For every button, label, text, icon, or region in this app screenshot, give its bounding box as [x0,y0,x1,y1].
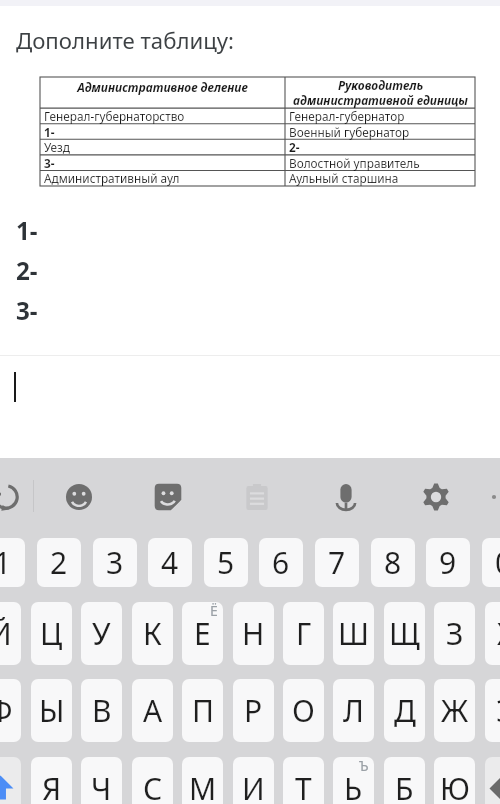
staticText: Д [394,690,416,731]
button[interactable]: Translate [0,477,26,517]
staticText: Р [244,690,263,731]
button[interactable]: Emoji [59,477,99,517]
staticText: 7 [328,542,346,583]
button[interactable]: Й [0,602,21,665]
button[interactable]: А [132,679,173,742]
button[interactable]: Г [283,602,324,665]
staticText: У [92,613,111,654]
staticText: Г [296,613,312,654]
staticText: 4 [161,542,179,583]
button[interactable]: Т [283,757,324,804]
button[interactable]: Ф [0,679,21,742]
staticText: Уезд [44,139,70,155]
staticText: Э [496,690,500,731]
button[interactable]: 7 [315,538,359,587]
button[interactable]: М [182,757,223,804]
staticText: Ч [91,768,112,804]
staticText: О [292,690,315,731]
staticText: Н [242,613,265,654]
button[interactable]: 9 [426,538,470,587]
button[interactable]: И [233,757,274,804]
staticText: Ж [441,690,469,731]
button[interactable]: 8 [371,538,415,587]
staticText: С [143,768,163,804]
staticText: 2- [16,254,38,287]
button[interactable]: О [283,679,324,742]
staticText: Волостной управитель [289,155,420,171]
staticText: 0 [495,542,500,583]
staticText: 3 [106,542,124,583]
button[interactable]: Ы [31,679,72,742]
button[interactable]: Э [485,679,500,742]
button[interactable]: Х [485,602,500,665]
button[interactable]: Б [384,757,425,804]
staticText: 1- [44,124,55,140]
button[interactable]: С [132,757,173,804]
staticText: Й [0,613,12,654]
button[interactable]: More options [483,477,500,517]
staticText: Я [42,768,62,804]
button[interactable]: Ь [333,757,374,804]
button[interactable]: З [434,602,475,665]
staticText: Аульный старшина [289,170,399,186]
button[interactable]: Backspace [485,757,500,804]
staticText: А [143,690,163,731]
staticText: Административный аул [44,170,180,186]
button[interactable]: П [182,679,223,742]
button[interactable]: Р [233,679,274,742]
button[interactable]: Д [384,679,425,742]
staticText: Щ [389,613,420,654]
staticText: Дополните таблицу: [16,25,235,55]
staticText: Е [194,613,211,654]
staticText: В [92,690,112,731]
staticText: 3- [16,294,38,327]
staticText: М [189,768,217,804]
button[interactable]: 3 [93,538,137,587]
button[interactable]: Voice input [326,477,366,517]
button[interactable]: 1 [0,538,25,587]
button[interactable]: Е [182,602,223,665]
button[interactable]: Щ [384,602,425,665]
button[interactable]: Ц [31,602,72,665]
button[interactable]: Shift [0,757,21,804]
button[interactable]: Ж [434,679,475,742]
button[interactable]: Л [333,679,374,742]
staticText: 5 [217,542,235,583]
button[interactable]: Н [233,602,274,665]
staticText: 3- [44,155,55,171]
button[interactable]: Settings [416,477,456,517]
button[interactable]: 2 [37,538,81,587]
staticText: Административное деление [77,79,248,95]
staticText: И [242,768,265,804]
staticText: Л [343,690,364,731]
button[interactable]: Я [31,757,72,804]
staticText: Ё [210,602,218,620]
staticText: Б [395,768,414,804]
staticText: 1- [16,214,38,247]
staticText: 2- [289,139,300,155]
button[interactable]: 4 [148,538,192,587]
button[interactable]: 5 [204,538,248,587]
staticText: 6 [272,542,290,583]
staticText: Ш [338,613,370,654]
staticText: Ю [440,768,470,804]
staticText: Руководитель административной единицы [293,77,468,108]
button[interactable]: Ш [333,602,374,665]
button[interactable]: Clipboard [237,477,277,517]
staticText: П [192,690,214,731]
button[interactable]: В [81,679,122,742]
button[interactable]: У [81,602,122,665]
button[interactable]: 6 [259,538,303,587]
button[interactable]: Ю [434,757,475,804]
button[interactable]: Ч [81,757,122,804]
staticText: 9 [439,542,457,583]
button[interactable]: 0 [482,538,500,587]
staticText: Военный губернатор [289,124,410,140]
button[interactable]: Stickers [148,477,188,517]
staticText: К [143,613,162,654]
button[interactable]: К [132,602,173,665]
staticText: Ы [39,690,65,731]
staticText: Ц [40,613,63,654]
staticText: 2 [50,542,68,583]
staticText: Генерал-губернатор [289,108,405,124]
